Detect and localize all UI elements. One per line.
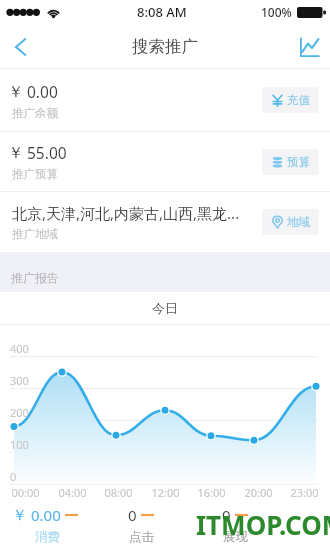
staticText: 今日 bbox=[152, 300, 178, 316]
staticText: 200 bbox=[10, 405, 29, 420]
button[interactable]: Report chart bbox=[288, 26, 330, 68]
staticText: ￥ bbox=[12, 506, 27, 525]
staticText: ￥ bbox=[8, 143, 24, 163]
staticText: 20:00 bbox=[244, 485, 273, 500]
staticText: 推广预算 bbox=[12, 167, 58, 181]
staticText: 100% bbox=[261, 4, 292, 20]
button[interactable]: 预算 bbox=[262, 149, 319, 175]
staticText: 08:00 bbox=[104, 485, 133, 500]
staticText: 0 bbox=[10, 469, 17, 484]
staticText: 地域 bbox=[287, 215, 310, 229]
button[interactable]: 今日 bbox=[0, 292, 330, 324]
staticText: 400 bbox=[10, 341, 29, 356]
staticText: 推广地域 bbox=[12, 227, 58, 241]
staticText: 消费 bbox=[35, 529, 60, 545]
staticText: 300 bbox=[10, 373, 29, 388]
staticText: 04:00 bbox=[58, 485, 87, 500]
staticText: 12:00 bbox=[151, 485, 180, 500]
staticText: 搜索推广 bbox=[132, 36, 198, 57]
button[interactable]: 充值 bbox=[262, 87, 319, 113]
button[interactable]: Back bbox=[0, 26, 42, 68]
staticText: 8:08 AM bbox=[137, 3, 187, 21]
staticText: 预算 bbox=[287, 155, 310, 169]
button[interactable]: ￥ bbox=[0, 498, 94, 550]
staticText: 展现 bbox=[223, 529, 248, 545]
staticText: 23:00 bbox=[290, 485, 319, 500]
staticText: 推广报告 bbox=[11, 270, 59, 285]
staticText: 充值 bbox=[287, 93, 310, 107]
staticText: 推广余额 bbox=[12, 106, 58, 120]
button[interactable]: 地域 bbox=[262, 209, 319, 235]
staticText: 0 bbox=[128, 505, 137, 525]
staticText: 00:00 bbox=[11, 485, 40, 500]
staticText: 16:00 bbox=[197, 485, 226, 500]
staticText: ITMOP.COM bbox=[196, 507, 330, 542]
button[interactable]: 0 bbox=[94, 498, 188, 550]
staticText: ￥ bbox=[8, 82, 24, 102]
staticText: 55.00 bbox=[27, 142, 67, 163]
staticText: 0.00 bbox=[27, 81, 58, 102]
button[interactable]: 0 bbox=[188, 498, 282, 550]
staticText: 0.00 bbox=[31, 505, 61, 525]
staticText: 100 bbox=[10, 437, 29, 452]
staticText: 北京,天津,河北,内蒙古,山西,黑龙... bbox=[12, 203, 240, 223]
staticText: 0 bbox=[222, 505, 231, 525]
staticText: 点击 bbox=[129, 529, 154, 545]
